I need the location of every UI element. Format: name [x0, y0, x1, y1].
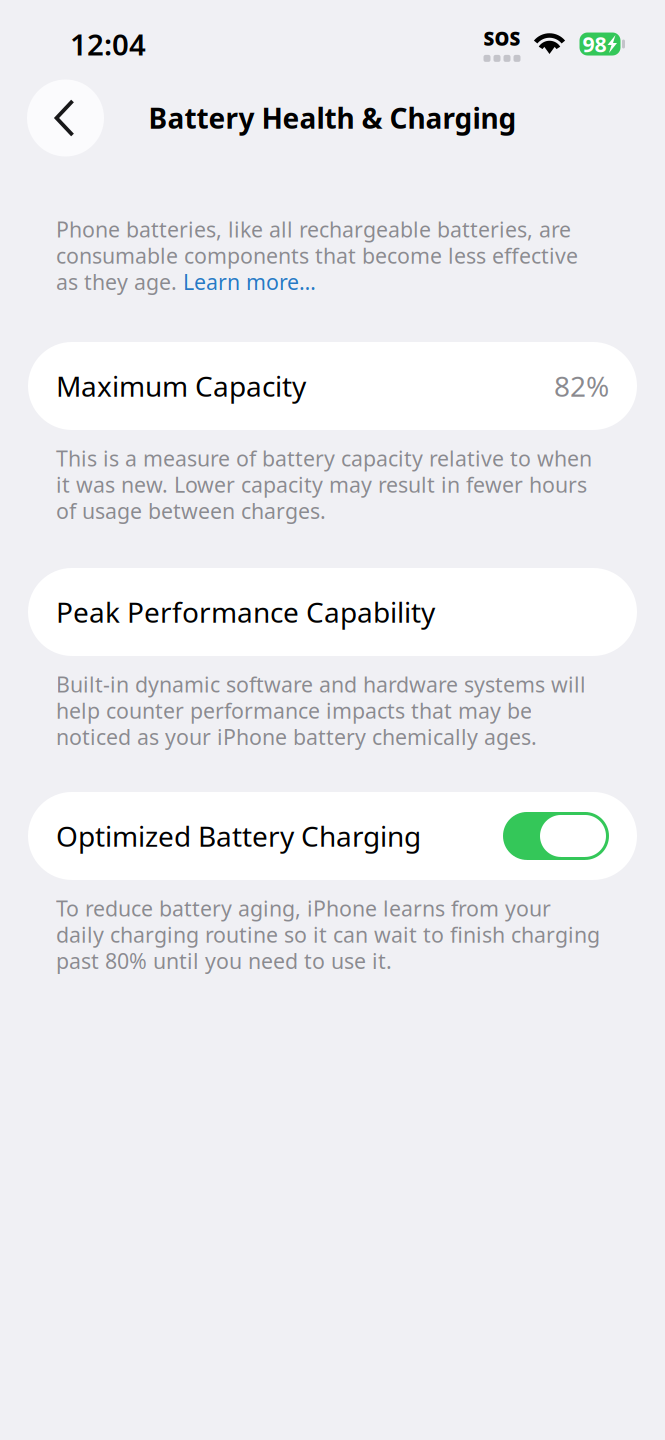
staticText: Phone batteries, like all rechargeable b… — [56, 215, 571, 243]
staticText: help counter performance impacts that ma… — [56, 696, 532, 725]
button[interactable]: Peak Performance Capability — [0, 568, 665, 656]
button[interactable]: Maximum Capacity — [0, 342, 665, 430]
staticText: it was new. Lower capacity may result in… — [56, 470, 587, 499]
staticText: Learn more… — [183, 268, 316, 296]
staticText: Battery Health & Charging — [148, 99, 516, 137]
staticText: Optimized Battery Charging — [56, 817, 421, 855]
button[interactable]: Learn more… — [183, 268, 316, 296]
button[interactable]: Back — [27, 79, 104, 156]
staticText: past 80% until you need to use it. — [56, 947, 392, 975]
button[interactable]: Optimized Battery Charging — [0, 792, 665, 880]
staticText: 82% — [554, 367, 609, 405]
staticText: SOS — [483, 26, 520, 51]
staticText: Maximum Capacity — [56, 367, 306, 405]
staticText: as they age. — [56, 268, 183, 296]
staticText: This is a measure of battery capacity re… — [56, 444, 592, 472]
staticText: of usage between charges. — [56, 497, 326, 525]
staticText: consumable components that become less e… — [56, 241, 578, 270]
staticText: Built-in dynamic software and hardware s… — [56, 670, 586, 698]
staticText: Peak Performance Capability — [56, 593, 435, 631]
button[interactable]: Optimized Battery Charging, on — [503, 812, 609, 860]
staticText: To reduce battery aging, iPhone learns f… — [56, 894, 551, 922]
staticText: daily charging routine so it can wait to… — [56, 920, 600, 949]
staticText: noticed as your iPhone battery chemicall… — [56, 723, 537, 751]
staticText: 98 — [582, 30, 606, 58]
staticText: 12:04 — [70, 24, 146, 63]
